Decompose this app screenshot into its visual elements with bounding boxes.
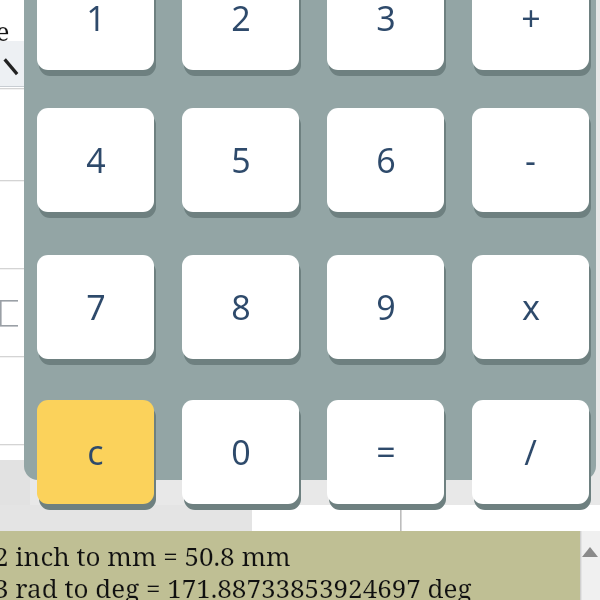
staticText: x [522, 284, 540, 330]
staticText: 1 [86, 0, 106, 41]
staticText: 2 inch to mm = 50.8 mm [0, 538, 291, 573]
button[interactable]: 1 [37, 0, 154, 78]
button[interactable]: 4 [37, 108, 154, 220]
button[interactable]: 3 [327, 0, 444, 78]
button[interactable]: 5 [182, 108, 299, 220]
staticText: 6 [376, 137, 396, 183]
button[interactable]: 9 [327, 255, 444, 367]
staticText: + [521, 0, 541, 41]
staticText: 8 [231, 284, 251, 330]
button[interactable]: c [37, 400, 154, 512]
button[interactable]: 8 [182, 255, 299, 367]
button[interactable]: Scroll up [580, 531, 600, 600]
button[interactable]: 0 [182, 400, 299, 512]
button[interactable]: + [472, 0, 589, 78]
button[interactable]: / [472, 400, 589, 512]
button[interactable]: x [472, 255, 589, 367]
staticText: e [0, 14, 10, 48]
staticText: 7 [86, 284, 106, 330]
staticText: 9 [376, 284, 396, 330]
button[interactable]: = [327, 400, 444, 512]
button[interactable]: 2 [182, 0, 299, 78]
staticText: / [524, 429, 537, 475]
staticText: c [87, 429, 104, 475]
staticText: 4 [86, 137, 106, 183]
button[interactable]: - [472, 108, 589, 220]
staticText: = [376, 429, 396, 475]
staticText: - [525, 137, 536, 183]
staticText: 3 rad to deg = 171.88733853924697 deg [0, 570, 472, 600]
staticText: 5 [231, 137, 251, 183]
button[interactable]: 6 [327, 108, 444, 220]
staticText: 0 [231, 429, 251, 475]
staticText: 3 [376, 0, 396, 41]
button[interactable]: 7 [37, 255, 154, 367]
staticText: 2 [231, 0, 251, 41]
